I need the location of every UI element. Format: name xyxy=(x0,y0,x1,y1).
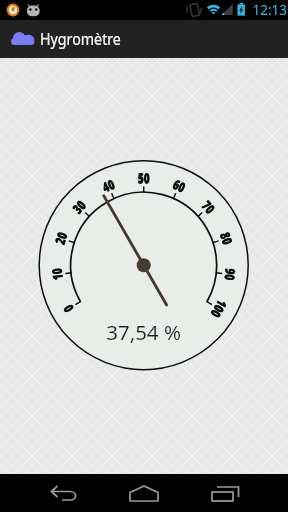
staticText: Hygromètre xyxy=(40,28,121,50)
button[interactable]: Back xyxy=(0,474,104,512)
button[interactable]: Home xyxy=(104,474,184,512)
button[interactable]: Recent apps xyxy=(184,474,288,512)
